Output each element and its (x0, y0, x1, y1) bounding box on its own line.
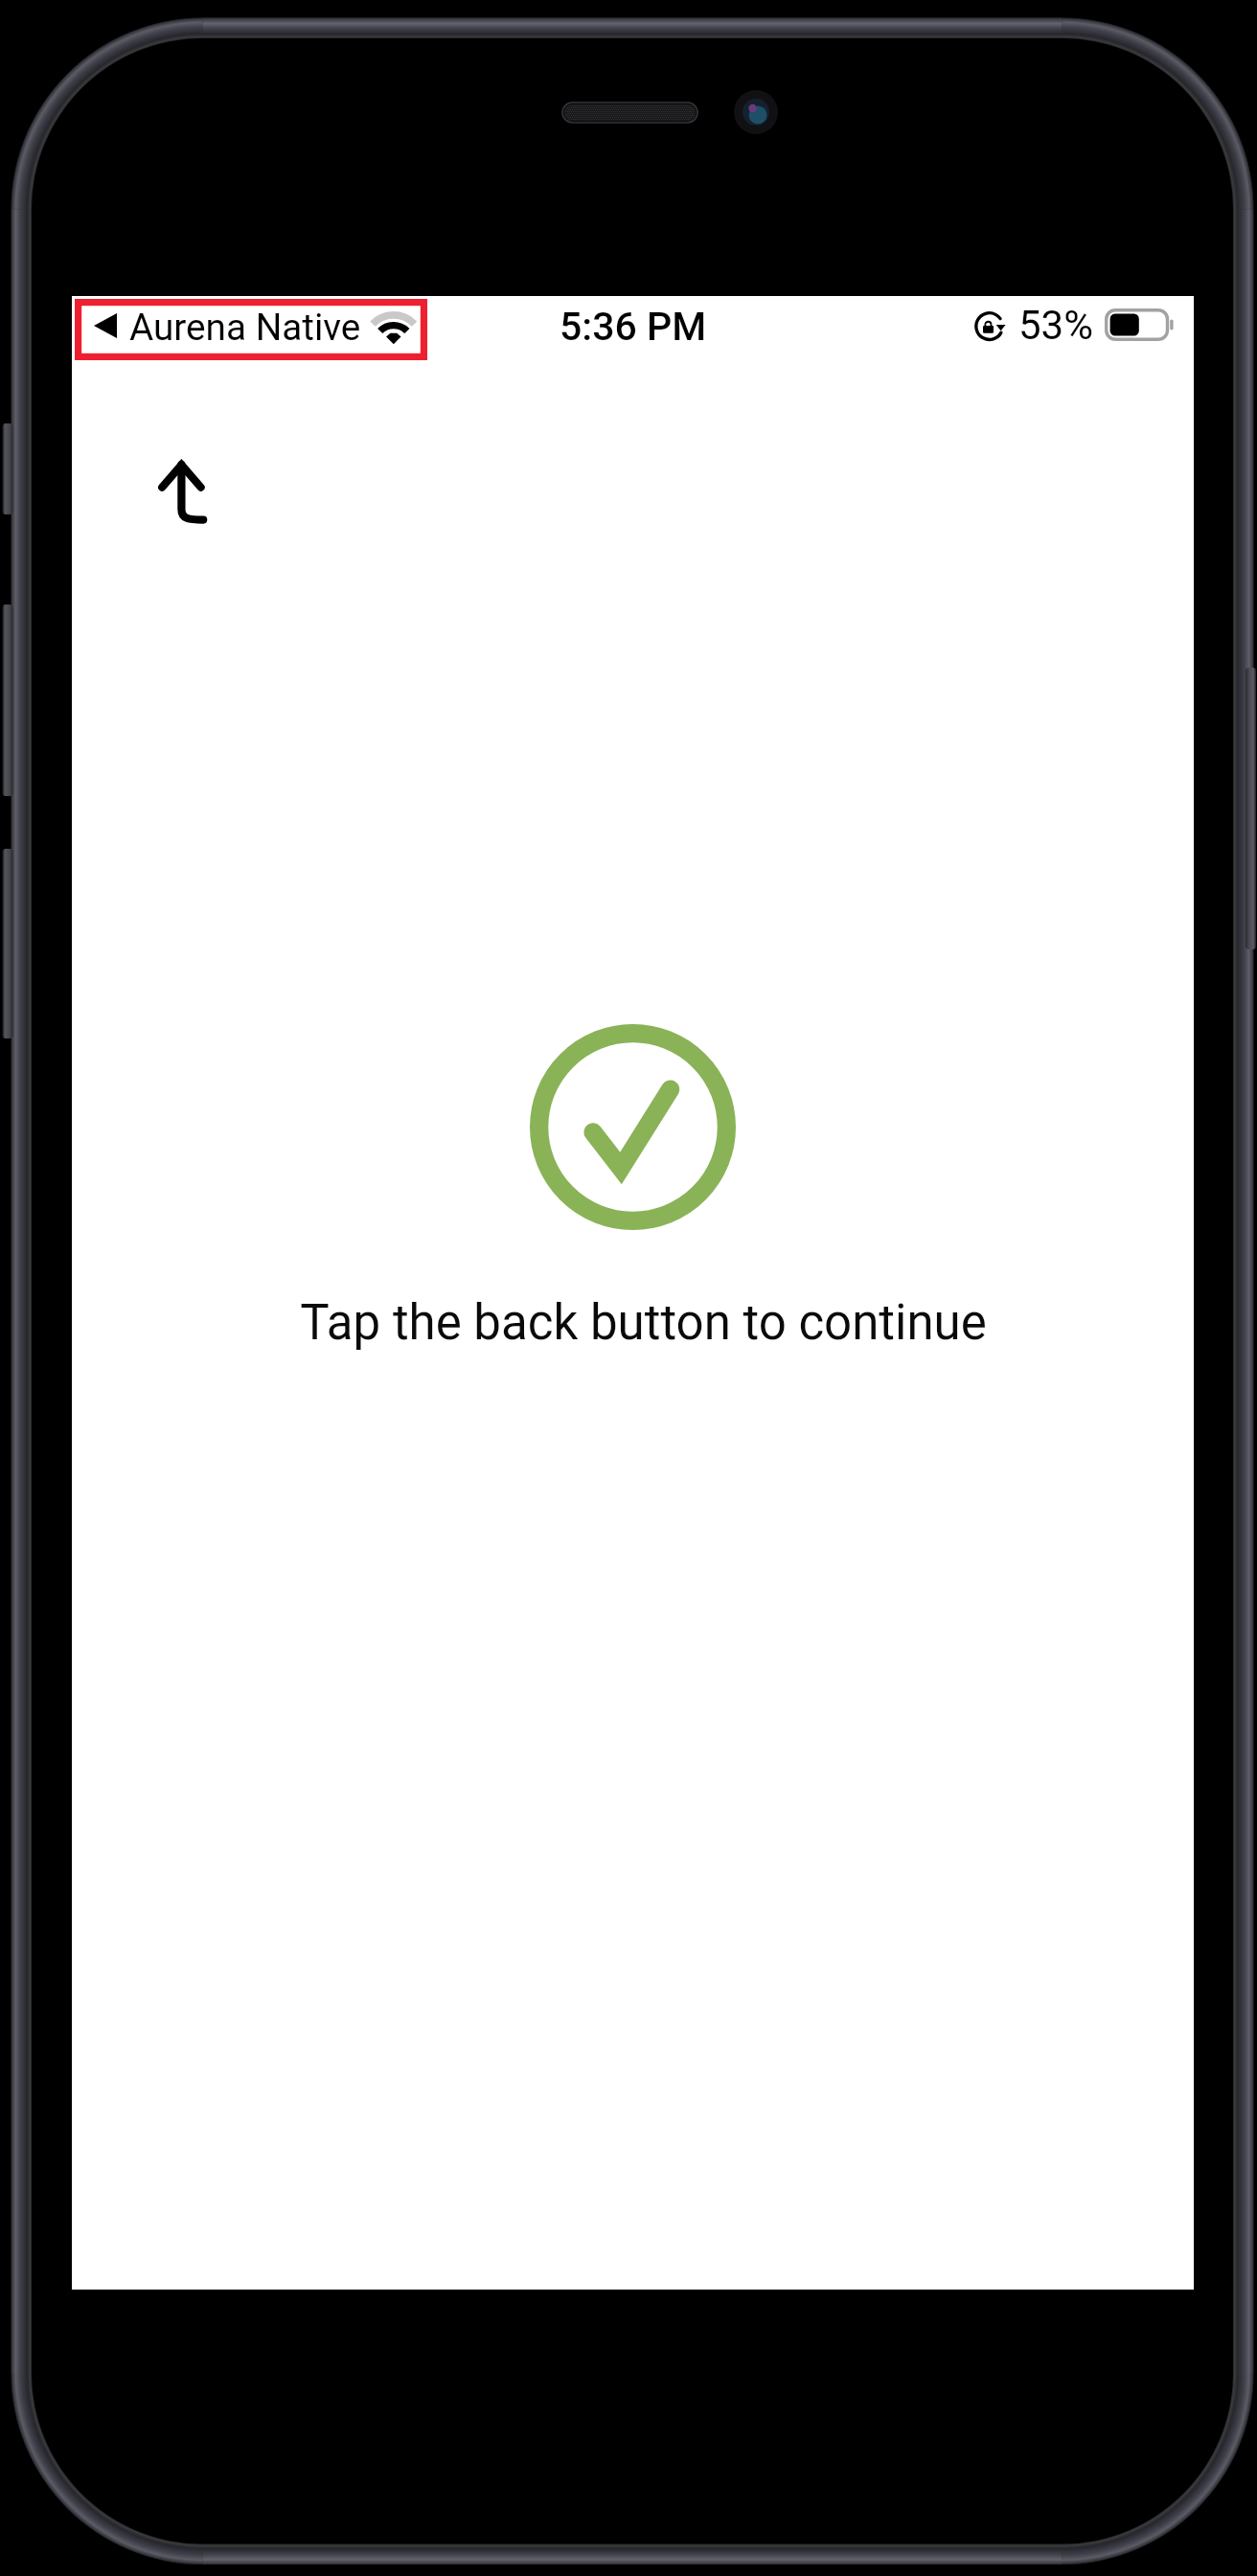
button[interactable]: Rotation lock (972, 309, 1008, 341)
button[interactable]: Back to Aurena Native (75, 299, 427, 360)
button[interactable]: Back (120, 422, 244, 560)
button[interactable]: Battery 53 percent (1105, 308, 1175, 341)
staticText: Tap the back button to continue (300, 1294, 987, 1352)
button[interactable]: 53% (1018, 302, 1093, 349)
staticText: Aurena Native (129, 306, 361, 349)
button[interactable]: 5:36 PM (560, 304, 707, 350)
